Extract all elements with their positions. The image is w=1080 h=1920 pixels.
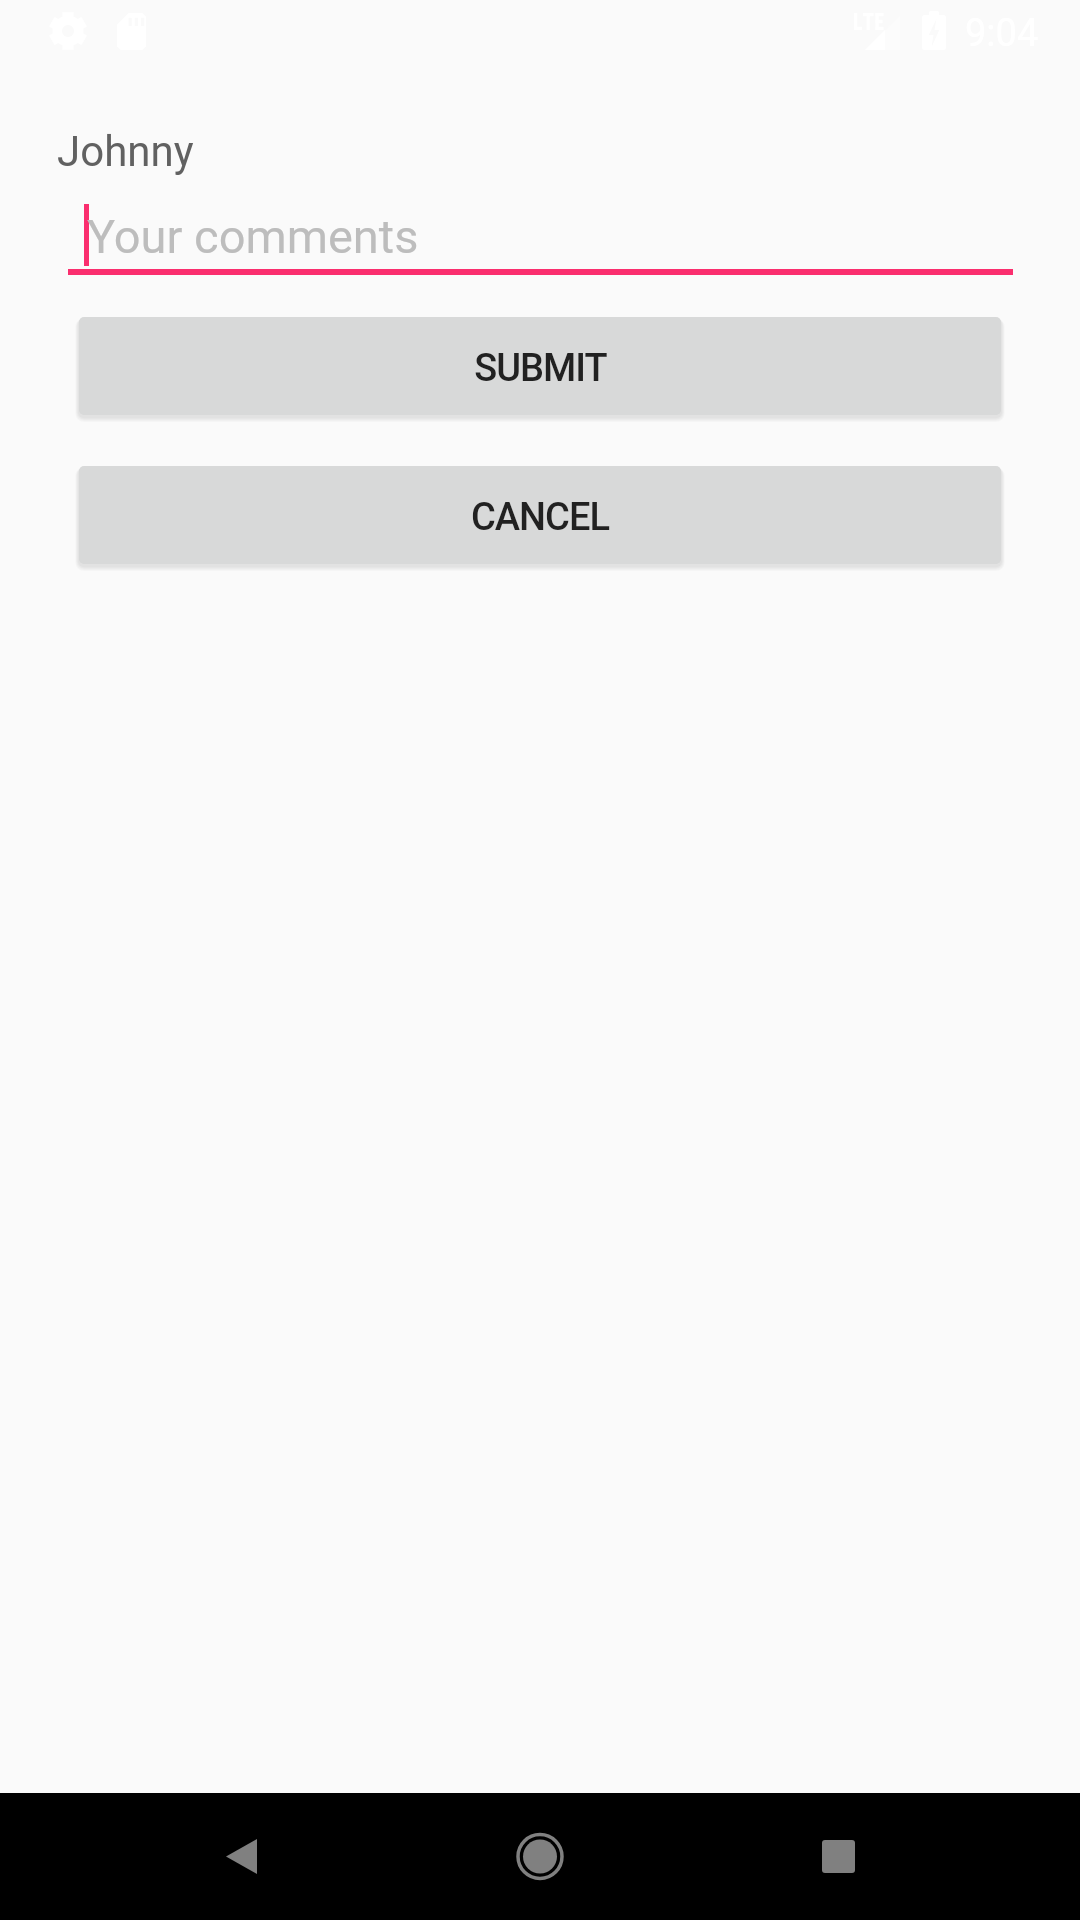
- staticText: Your comments: [87, 209, 419, 264]
- staticText: CANCEL: [471, 495, 609, 540]
- button[interactable]: SUBMIT: [79, 317, 1001, 415]
- button[interactable]: Recent apps: [778, 1793, 898, 1920]
- button[interactable]: Home: [480, 1793, 600, 1920]
- button[interactable]: Your comments: [0, 176, 1080, 279]
- staticText: Johnny: [57, 127, 194, 176]
- staticText: SUBMIT: [474, 346, 607, 391]
- button[interactable]: CANCEL: [79, 466, 1001, 564]
- button[interactable]: Back: [180, 1793, 300, 1920]
